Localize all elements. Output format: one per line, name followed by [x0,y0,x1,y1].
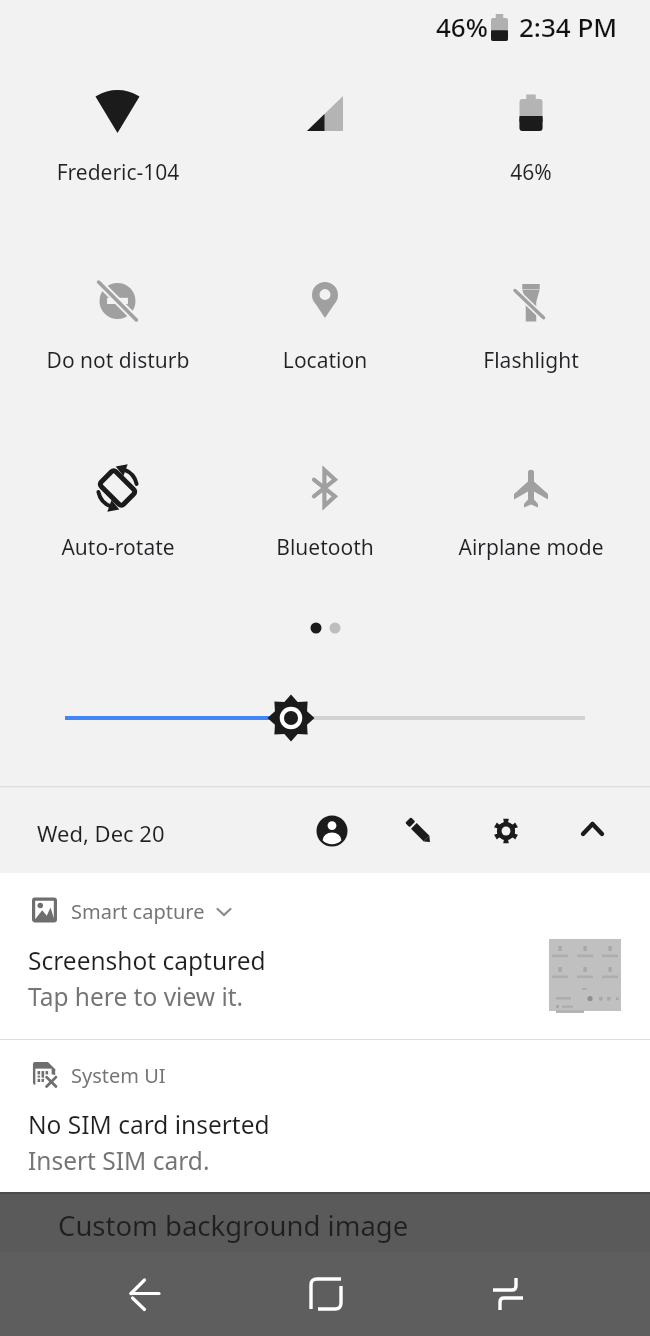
staticText: Airplane mode [381,533,650,562]
staticText: Tap here to view it. [28,980,244,1013]
staticText: Frederic-104 [0,158,268,187]
button[interactable]: Collapse panel [571,809,615,853]
staticText: Auto-rotate [0,533,268,562]
staticText: Smart capture [71,898,205,925]
staticText: Do not disturb [0,346,268,375]
staticText: 46% [381,158,650,187]
button[interactable]: Back [0,1252,216,1336]
staticText: System UI [71,1062,166,1089]
button[interactable] [433,188,650,376]
staticText: Bluetooth [175,533,475,562]
staticText: 2:34 PM [519,9,618,44]
button[interactable]: Settings [484,809,528,853]
staticText: Custom background image [58,1207,409,1244]
staticText: Screenshot captured [28,944,266,977]
staticText: 46% [436,9,488,44]
button[interactable] [0,188,216,376]
button[interactable]: Smart capture [0,873,650,1039]
button[interactable]: System UI [0,1040,650,1192]
staticText: Flashlight [381,346,650,375]
button[interactable] [433,0,650,188]
button[interactable]: Edit [397,809,441,853]
button[interactable] [0,0,216,188]
button[interactable] [216,0,433,188]
button[interactable] [433,376,650,564]
button[interactable]: Home [216,1252,433,1336]
button[interactable] [216,376,433,564]
staticText: Insert SIM card. [28,1144,210,1177]
button[interactable]: Recents [433,1252,650,1336]
button[interactable] [0,376,216,564]
button[interactable] [216,188,433,376]
staticText: Location [175,346,475,375]
staticText: Wed, Dec 20 [37,818,165,848]
staticText: No SIM card inserted [28,1108,270,1141]
button[interactable]: Account [310,809,354,853]
